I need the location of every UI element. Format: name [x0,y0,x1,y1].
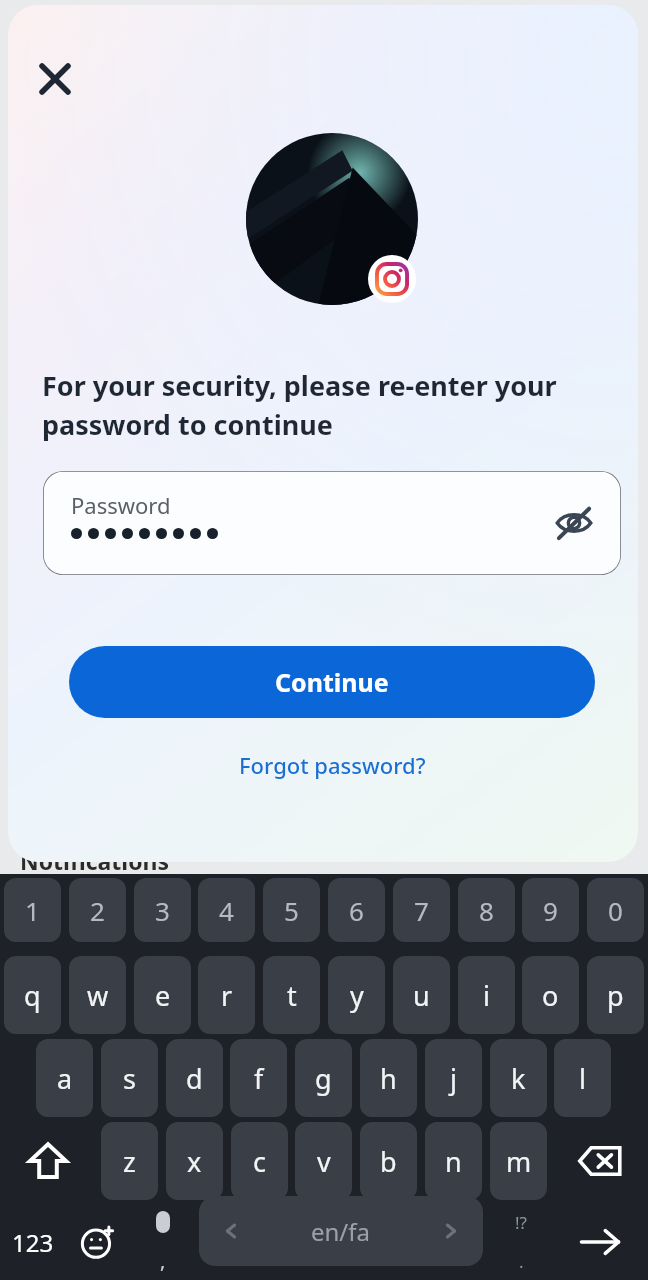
staticText: Continue [275,665,389,699]
button[interactable]: Forgot password? [188,743,476,787]
button[interactable]: t [263,956,320,1034]
staticText: j [450,1060,457,1097]
staticText: q [24,977,41,1014]
staticText: 2 [90,893,105,928]
button[interactable]: l [554,1039,611,1117]
staticText: Forgot password? [239,750,426,780]
staticText: z [123,1143,136,1180]
staticText: l [579,1060,586,1097]
button[interactable]: 5 [263,878,320,942]
button[interactable]: h [360,1039,417,1117]
staticText: 0 [608,893,623,928]
staticText: m [506,1143,532,1180]
staticText: 8 [479,893,494,928]
button[interactable]: y [328,956,385,1034]
button[interactable]: !? [490,1204,552,1280]
button[interactable]: Show password [547,496,601,550]
staticText: 7 [414,893,429,928]
staticText: n [445,1143,462,1180]
staticText: c [253,1143,266,1180]
button[interactable]: en/fa [199,1196,483,1266]
button[interactable]: Enter [560,1204,640,1280]
button[interactable]: b [360,1122,417,1200]
button[interactable]: a [36,1039,93,1117]
button[interactable]: v [295,1122,352,1200]
button[interactable]: c [231,1122,288,1200]
staticText: f [254,1060,264,1097]
staticText: y [350,977,364,1014]
staticText: 3 [155,893,170,928]
staticText: Password [71,490,171,520]
button[interactable]: m [490,1122,547,1200]
button[interactable]: w [69,956,126,1034]
staticText: x [187,1143,202,1180]
staticText: . [519,1250,524,1273]
staticText: 9 [543,893,558,928]
staticText: 1 [25,893,40,928]
button[interactable]: x [166,1122,223,1200]
staticText: k [511,1060,526,1097]
button[interactable]: p [587,956,644,1034]
staticText: d [186,1060,203,1097]
button[interactable]: 3 [134,878,191,942]
staticText: o [542,977,559,1014]
button[interactable]: s [101,1039,158,1117]
button[interactable]: Voice input [132,1204,194,1280]
button[interactable]: z [101,1122,158,1200]
button[interactable]: Shift [8,1122,88,1200]
button[interactable]: 2 [69,878,126,942]
button[interactable]: 0 [587,878,644,942]
staticText: h [380,1060,397,1097]
button[interactable]: Backspace [560,1122,640,1200]
button[interactable]: 6 [328,878,385,942]
staticText: Notifications [20,845,170,876]
button[interactable]: n [425,1122,482,1200]
staticText: g [315,1060,332,1097]
button[interactable]: g [295,1039,352,1117]
staticText: p [607,977,624,1014]
button[interactable]: 1 [4,878,61,942]
staticText: u [413,977,430,1014]
button[interactable]: o [522,956,579,1034]
button[interactable]: 4 [198,878,255,942]
staticText: b [380,1143,397,1180]
button[interactable]: q [4,956,61,1034]
button[interactable]: 8 [458,878,515,942]
staticText: 123 [12,1226,54,1259]
staticText: e [155,977,171,1014]
button[interactable]: j [425,1039,482,1117]
button[interactable]: Emoji [66,1204,130,1280]
button[interactable]: Close [28,52,82,106]
staticText: s [123,1060,136,1097]
staticText: !? [515,1211,527,1234]
staticText: For your security, please re-enter your … [42,367,622,443]
staticText: w [87,977,109,1014]
button[interactable]: 9 [522,878,579,942]
staticText: 4 [219,893,234,928]
button[interactable]: i [458,956,515,1034]
staticText: i [483,977,490,1014]
staticText: 5 [284,893,299,928]
button[interactable]: u [393,956,450,1034]
button[interactable]: 7 [393,878,450,942]
button[interactable]: 123 [0,1204,66,1280]
button[interactable]: d [166,1039,223,1117]
staticText: , [160,1247,166,1274]
button[interactable]: f [230,1039,287,1117]
staticText: a [57,1060,73,1097]
button[interactable]: Continue [69,646,595,718]
staticText: 6 [349,893,364,928]
button[interactable]: r [198,956,255,1034]
button[interactable]: Password [43,471,621,575]
button[interactable]: e [134,956,191,1034]
staticText: t [287,977,297,1014]
staticText: v [317,1143,331,1180]
staticText: r [221,977,233,1014]
staticText: en/fa [311,1215,371,1248]
button[interactable]: k [490,1039,547,1117]
